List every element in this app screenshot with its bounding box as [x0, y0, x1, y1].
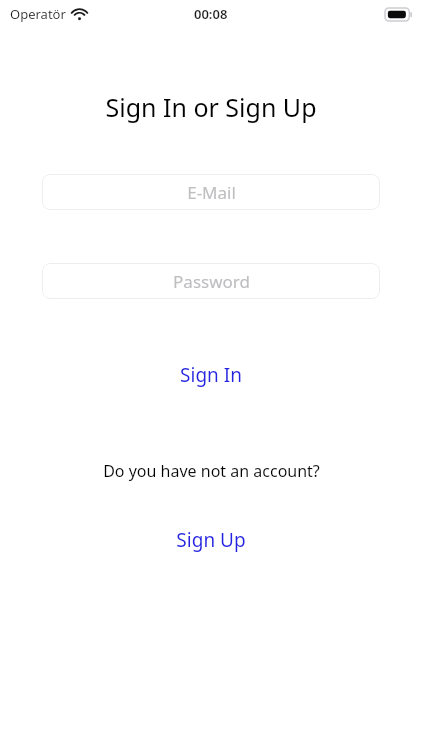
staticText: E-Mail [187, 181, 236, 204]
staticText: Sign In [180, 362, 242, 388]
staticText: Password [173, 270, 250, 293]
staticText: Sign Up [176, 527, 246, 553]
staticText: 00:08 [194, 5, 228, 23]
button[interactable]: Sign Up [158, 521, 264, 559]
staticText: Operatör [10, 5, 66, 23]
button[interactable]: Password [42, 263, 380, 299]
staticText: Sign In or Sign Up [105, 90, 317, 124]
staticText: Do you have not an account? [103, 460, 320, 482]
button[interactable]: Sign In [162, 356, 260, 394]
button[interactable]: E-Mail [42, 174, 380, 210]
